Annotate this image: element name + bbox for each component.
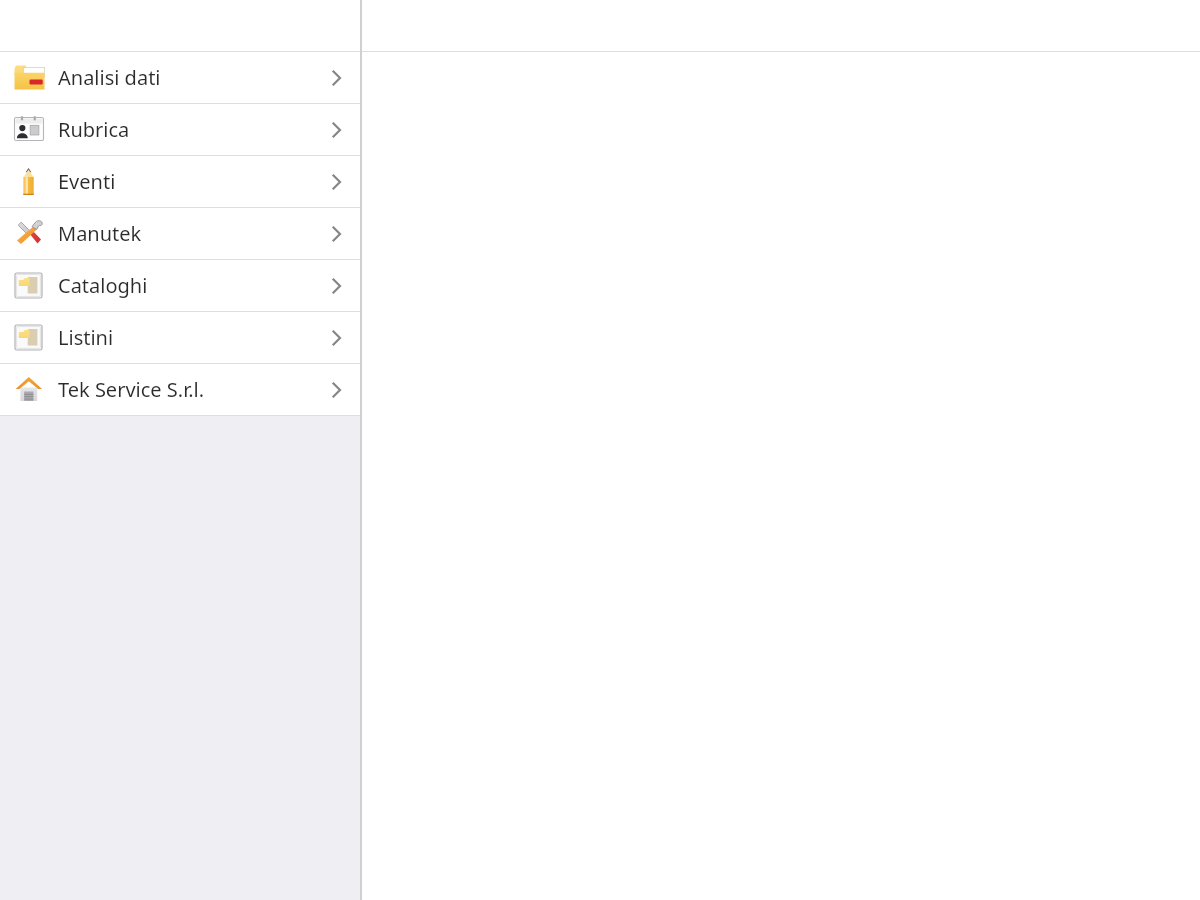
button[interactable]: Eventi bbox=[0, 156, 360, 207]
staticText: Rubrica bbox=[58, 116, 340, 143]
staticText: Eventi bbox=[58, 168, 340, 195]
button[interactable]: Analisi dati bbox=[0, 52, 360, 103]
button[interactable]: Listini bbox=[0, 312, 360, 363]
button[interactable]: Manutek bbox=[0, 208, 360, 259]
staticText: Cataloghi bbox=[58, 272, 340, 299]
staticText: Analisi dati bbox=[58, 64, 340, 91]
button[interactable]: Cataloghi bbox=[0, 260, 360, 311]
staticText: Listini bbox=[58, 324, 340, 351]
staticText: Manutek bbox=[58, 220, 340, 247]
button[interactable]: Tek Service S.r.l. bbox=[0, 364, 360, 415]
staticText: Tek Service S.r.l. bbox=[58, 376, 340, 403]
button[interactable]: Rubrica bbox=[0, 104, 360, 155]
